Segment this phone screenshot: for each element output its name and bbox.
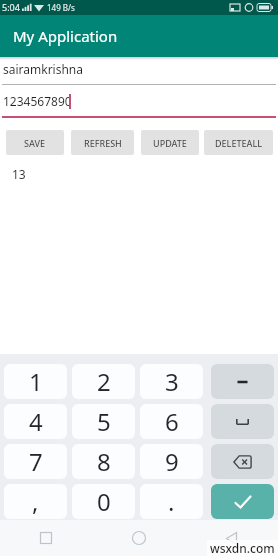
staticText: 149 B/s [47, 2, 75, 13]
button[interactable] [211, 364, 274, 399]
staticText: 5 [97, 405, 111, 438]
staticText: , [32, 485, 39, 518]
button[interactable]: 3 [140, 364, 203, 399]
button[interactable] [211, 484, 274, 519]
button[interactable]: 9 [140, 444, 203, 479]
button[interactable]: 1 [4, 364, 67, 399]
button[interactable]: 1234567890 [0, 86, 278, 119]
staticText: My Application [13, 26, 118, 46]
button[interactable]: , [4, 484, 67, 519]
staticText: wsxdn.com [210, 540, 275, 556]
button[interactable]: 0 [72, 484, 135, 519]
button[interactable]: 8 [72, 444, 135, 479]
button[interactable]: UPDATE [141, 130, 199, 155]
staticText: . [168, 485, 175, 518]
button[interactable] [92, 520, 185, 556]
staticText: sairamkrishna [3, 61, 84, 77]
button[interactable] [185, 520, 278, 556]
staticText: 1234567890 [3, 93, 72, 109]
button[interactable]: 4 [4, 404, 67, 439]
button[interactable]: 2 [72, 364, 135, 399]
staticText: 6 [165, 405, 179, 438]
button[interactable]: 5 [72, 404, 135, 439]
staticText: UPDATE [153, 137, 187, 149]
staticText: 0 [97, 485, 111, 518]
staticText: 4 [29, 405, 43, 438]
button[interactable]: 7 [4, 444, 67, 479]
staticText: 1 [29, 365, 43, 398]
button[interactable]: . [140, 484, 203, 519]
button[interactable]: DELETEALL [204, 130, 273, 155]
button[interactable] [211, 444, 274, 479]
button[interactable]: REFRESH [71, 130, 134, 155]
staticText: 7 [29, 445, 43, 478]
staticText: REFRESH [84, 137, 122, 149]
staticText: 13 [12, 166, 26, 182]
staticText: 2 [97, 365, 111, 398]
button[interactable]: SAVE [6, 130, 64, 155]
button[interactable] [0, 520, 92, 556]
staticText: 5:04 [2, 1, 20, 13]
button[interactable]: 6 [140, 404, 203, 439]
staticText: 8 [97, 445, 111, 478]
staticText: DELETEALL [215, 137, 262, 149]
staticText: 9 [165, 445, 179, 478]
staticText: 3 [165, 365, 179, 398]
button[interactable]: sairamkrishna [0, 58, 278, 86]
button[interactable] [211, 404, 274, 439]
staticText: SAVE [24, 137, 46, 149]
